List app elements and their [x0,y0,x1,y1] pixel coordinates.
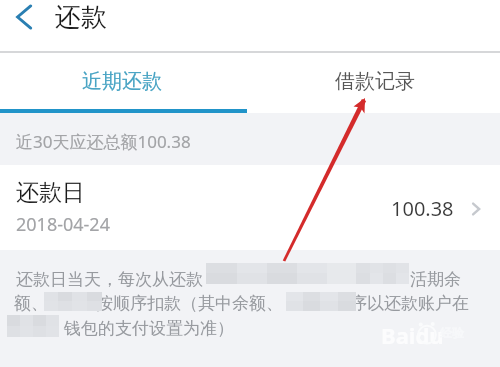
button[interactable]: Back [4,0,44,37]
staticText: 2018-04-24 [16,212,110,237]
staticText: Baidu [381,320,444,350]
staticText: 近期还款 [82,69,162,94]
button[interactable]: 借款记录 [250,53,500,113]
button[interactable]: 还款日 [0,165,500,250]
staticText: 还款日 [16,178,85,207]
staticText: 还款 [55,1,107,34]
staticText: 序以还款账户在 [350,293,469,314]
button[interactable]: 近期还款 [0,53,250,113]
staticText: 额、 [14,293,48,314]
staticText: 借款记录 [335,69,415,94]
staticText: 近30天应还总额100.38 [16,130,191,153]
staticText: 钱包的支付设置为准） [64,318,234,339]
staticText: 还款日当天，每次从还款 [16,269,203,290]
staticText: 按顺序扣款（其中余额、 [96,293,283,314]
staticText: 活期余 [410,269,461,290]
staticText: 100.38 [391,195,454,222]
